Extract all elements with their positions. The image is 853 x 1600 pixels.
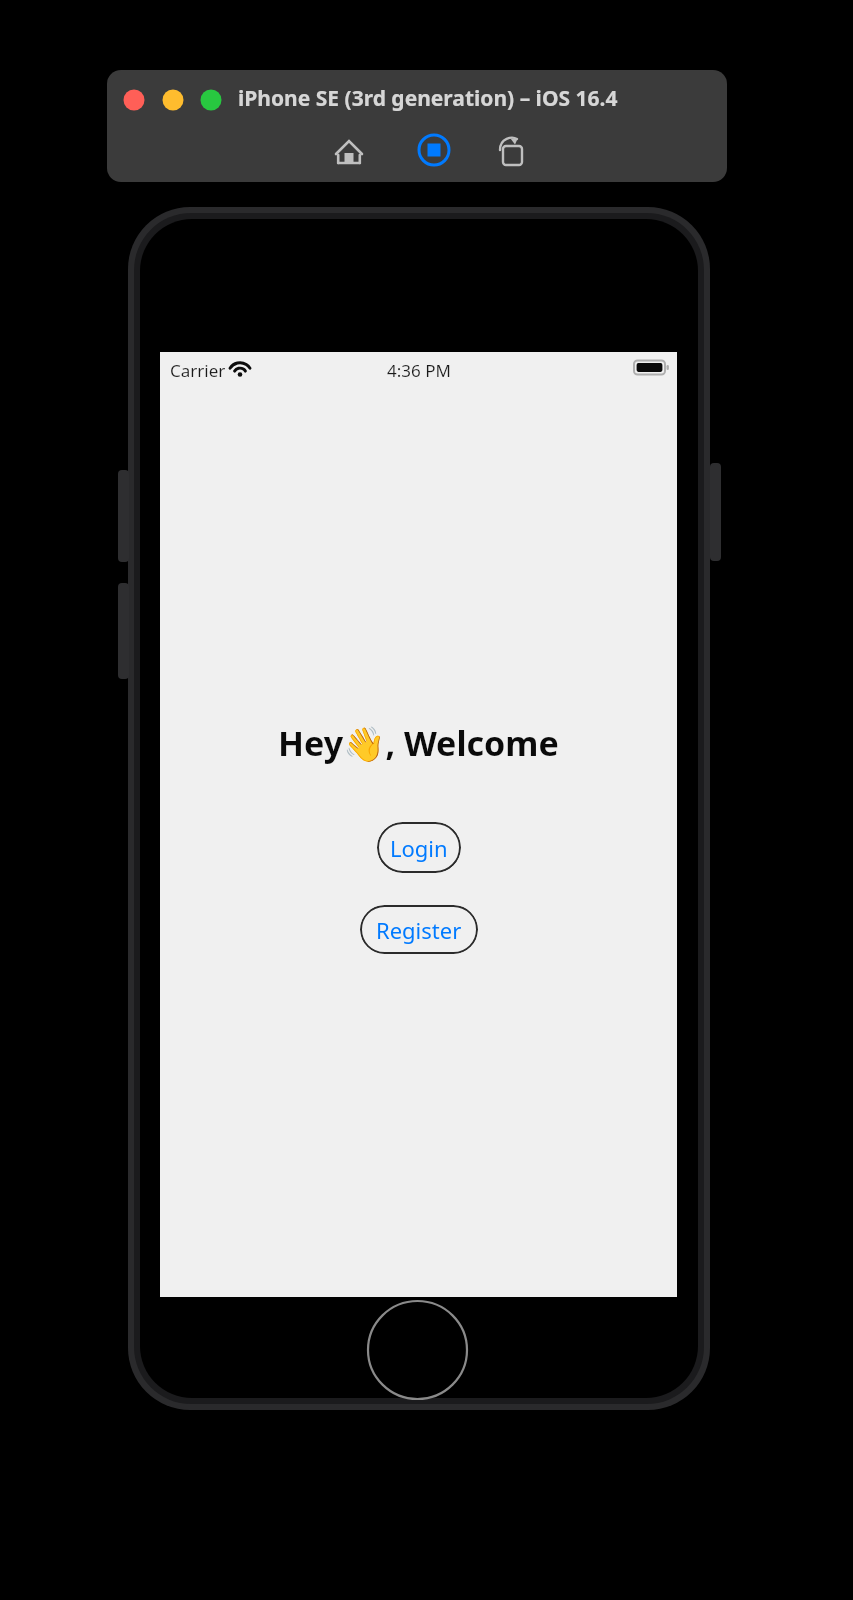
button[interactable]: Volume down [118, 583, 129, 679]
staticText: Hey👋, Welcome [278, 720, 559, 766]
staticText: 4:36 PM [387, 359, 451, 382]
button[interactable]: Login [377, 822, 461, 873]
button[interactable]: Volume up [118, 470, 129, 562]
button[interactable]: Record screen [414, 130, 454, 170]
button[interactable]: Rotate [489, 130, 529, 170]
staticText: iPhone SE (3rd generation) – iOS 16.4 [238, 84, 618, 113]
staticText: Carrier [170, 359, 226, 382]
staticText: Login [390, 833, 448, 863]
staticText: Register [376, 915, 462, 945]
button[interactable]: Home [329, 130, 369, 170]
button[interactable]: Power [710, 463, 721, 561]
button[interactable]: Register [360, 905, 478, 954]
